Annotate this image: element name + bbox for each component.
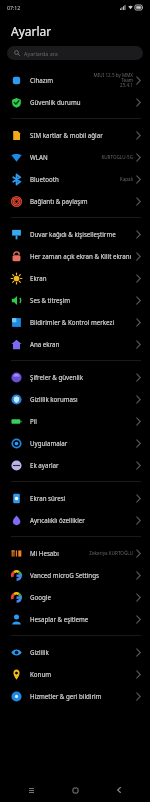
button[interactable]: Cihazım xyxy=(0,69,150,91)
button[interactable]: Bağlantı & paylaşım xyxy=(0,190,150,212)
staticText: Mi Hesabı xyxy=(30,549,85,557)
button[interactable]: Uygulamalar xyxy=(0,432,150,454)
button[interactable]: Recent apps xyxy=(18,778,44,802)
staticText: Şifreler & güvenlik xyxy=(30,373,136,381)
staticText: Ses & titreşim xyxy=(30,296,136,304)
button[interactable]: Gizlilik xyxy=(0,641,150,663)
button[interactable]: Google xyxy=(0,586,150,608)
button[interactable]: Hizmetler & geri bildirim xyxy=(0,685,150,707)
staticText: KURTOGLU-5G xyxy=(85,154,133,160)
staticText: Bildirimler & Kontrol merkezi xyxy=(30,318,136,326)
staticText: Ayarlar xyxy=(11,23,52,39)
button[interactable]: Gizlilik koruması xyxy=(0,388,150,410)
button[interactable]: Hesaplar & eşitleme xyxy=(0,608,150,630)
staticText: Ekran xyxy=(30,274,136,282)
button[interactable]: Mi Hesabı xyxy=(0,542,150,564)
button[interactable]: Ayrıcalıklı özellikler xyxy=(0,509,150,531)
staticText: Ayrıcalıklı özellikler xyxy=(30,516,136,524)
staticText: WLAN xyxy=(30,153,85,161)
staticText: Ek ayarlar xyxy=(30,461,136,469)
staticText: Her zaman açık ekran & Kilit ekranı xyxy=(30,252,136,260)
staticText: Vanced microG Settings xyxy=(30,571,136,579)
staticText: Ayarlarda ara xyxy=(24,50,58,57)
staticText: SIM kartlar & mobil ağlar xyxy=(30,131,136,139)
staticText: Gizlilik xyxy=(30,648,136,656)
staticText: Cihazım xyxy=(30,76,85,84)
staticText: Hesaplar & eşitleme xyxy=(30,615,136,623)
button[interactable]: Ekran xyxy=(0,267,150,289)
staticText: Konum xyxy=(30,670,136,678)
button[interactable]: Ana ekran xyxy=(0,333,150,355)
button[interactable]: Bildirimler & Kontrol merkezi xyxy=(0,311,150,333)
button[interactable]: Vanced microG Settings xyxy=(0,564,150,586)
staticText: Hizmetler & geri bildirim xyxy=(30,692,136,700)
button[interactable]: Ses & titreşim xyxy=(0,289,150,311)
button[interactable]: WLAN xyxy=(0,146,150,168)
button[interactable]: SIM kartlar & mobil ağlar xyxy=(0,124,150,146)
staticText: Bluetooth xyxy=(30,175,85,183)
button[interactable]: Bluetooth xyxy=(0,168,150,190)
staticText: Ekran süresi xyxy=(30,494,136,502)
staticText: Duvar kağıdı & kişiselleştirme xyxy=(30,230,136,238)
staticText: 07:12 xyxy=(7,4,21,11)
staticText: Bağlantı & paylaşım xyxy=(30,197,136,205)
button[interactable]: Her zaman açık ekran & Kilit ekranı xyxy=(0,245,150,267)
button[interactable]: Home xyxy=(62,778,88,802)
button[interactable]: Ekran süresi xyxy=(0,487,150,509)
staticText: Kapalı xyxy=(85,176,133,182)
staticText: Pil xyxy=(30,417,136,425)
button[interactable]: Güvenlik durumu xyxy=(0,91,150,113)
button[interactable]: Ayarlarda ara xyxy=(7,46,143,60)
staticText: Ana ekran xyxy=(30,340,136,348)
staticText: Güvenlik durumu xyxy=(30,98,136,106)
button[interactable]: Konum xyxy=(0,663,150,685)
button[interactable]: Back xyxy=(106,778,132,802)
staticText: Zekeriya KURTOĞLU xyxy=(85,550,133,556)
staticText: MIUI 12.5 by MMX Team 25.4.1 xyxy=(85,72,133,89)
staticText: Google xyxy=(30,593,136,601)
button[interactable]: Pil xyxy=(0,410,150,432)
button[interactable]: Duvar kağıdı & kişiselleştirme xyxy=(0,223,150,245)
staticText: Gizlilik koruması xyxy=(30,395,136,403)
button[interactable]: Şifreler & güvenlik xyxy=(0,366,150,388)
staticText: Uygulamalar xyxy=(30,439,136,447)
button[interactable]: Ek ayarlar xyxy=(0,454,150,476)
